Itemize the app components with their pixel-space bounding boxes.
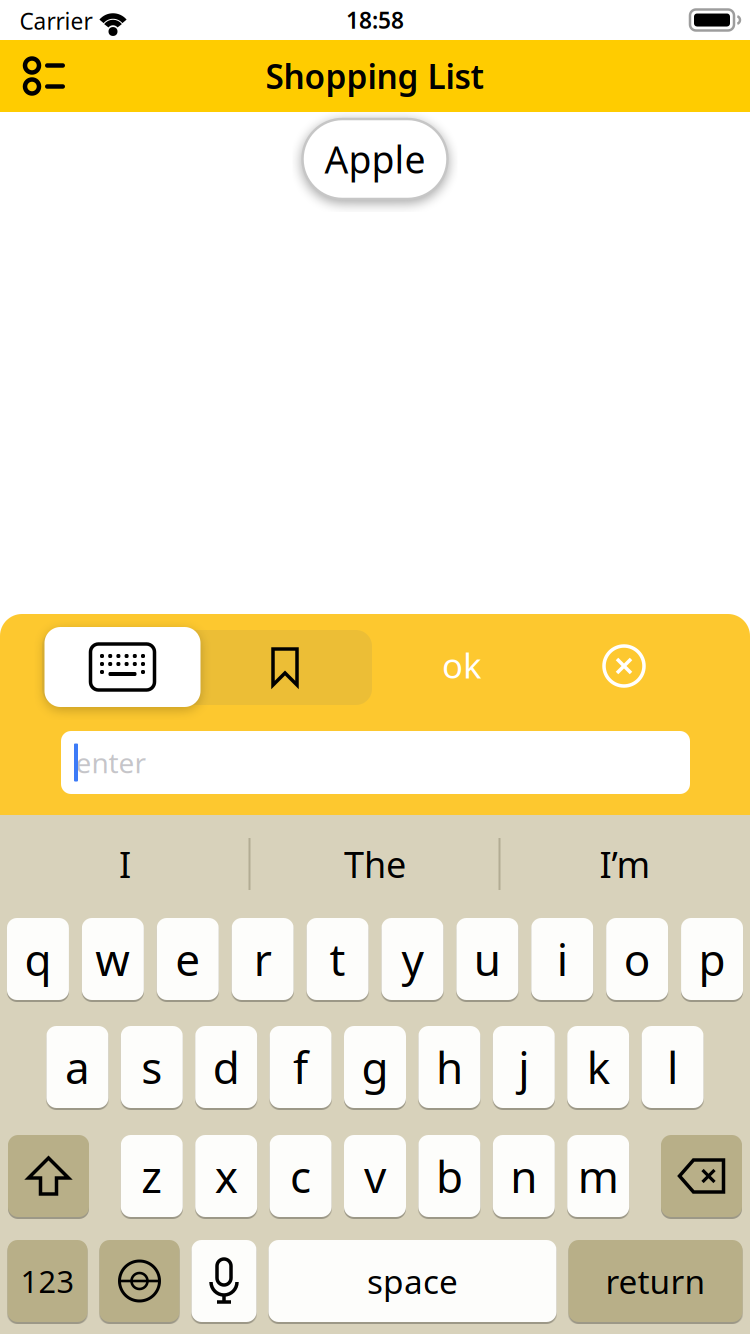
button[interactable]: q [7,918,69,1000]
button[interactable]: ok [417,630,507,700]
button[interactable]: c [270,1135,332,1217]
staticText: 18:58 [346,5,404,35]
staticText: g [361,1038,388,1096]
button[interactable] [99,1240,179,1322]
staticText: j [518,1038,529,1096]
button[interactable]: e [157,918,219,1000]
button[interactable]: space [268,1240,556,1322]
staticText: e [175,930,200,988]
button[interactable] [8,1135,89,1217]
button[interactable]: y [381,918,443,1000]
button[interactable]: j [493,1026,555,1108]
staticText: The [344,840,406,888]
button[interactable]: Apple [302,119,447,199]
staticText: q [24,930,51,988]
button[interactable] [22,56,66,96]
button[interactable]: I [5,829,245,899]
button[interactable]: n [493,1135,555,1217]
button[interactable]: r [232,918,294,1000]
button[interactable]: f [270,1026,332,1108]
button[interactable]: a [46,1026,108,1108]
staticText: m [578,1147,619,1205]
button[interactable]: t [307,918,369,1000]
button[interactable]: u [456,918,518,1000]
staticText: v [364,1147,386,1205]
staticText: w [95,930,130,988]
button[interactable]: enter [61,731,690,794]
staticText: c [290,1147,311,1205]
button[interactable]: g [344,1026,406,1108]
button[interactable] [44,627,200,707]
button[interactable] [661,1135,742,1217]
staticText: u [474,930,501,988]
staticText: space [367,1259,458,1303]
staticText: p [698,930,725,988]
button[interactable]: o [606,918,668,1000]
staticText: t [330,930,346,988]
button[interactable]: The [255,829,495,899]
button[interactable]: z [121,1135,183,1217]
button[interactable]: 123 [7,1240,87,1322]
staticText: enter [75,744,146,781]
staticText: z [141,1147,162,1205]
staticText: I [119,840,131,888]
button[interactable]: v [344,1135,406,1217]
button[interactable]: m [567,1135,629,1217]
staticText: s [141,1038,162,1096]
button[interactable] [594,636,654,696]
staticText: Apple [324,134,425,184]
staticText: k [587,1038,610,1096]
staticText: x [215,1147,238,1205]
button[interactable]: s [121,1026,183,1108]
button[interactable]: b [418,1135,480,1217]
staticText: d [213,1038,240,1096]
button[interactable]: h [418,1026,480,1108]
button[interactable]: return [568,1240,742,1322]
button[interactable]: I’m [505,829,745,899]
staticText: l [667,1038,678,1096]
staticText: n [510,1147,537,1205]
staticText: r [254,930,272,988]
button[interactable]: p [681,918,743,1000]
staticText: o [624,930,651,988]
staticText: b [436,1147,463,1205]
staticText: Carrier [19,6,92,36]
button[interactable]: k [567,1026,629,1108]
button[interactable] [235,632,335,702]
button[interactable]: d [195,1026,257,1108]
staticText: return [605,1259,705,1303]
staticText: y [401,930,423,988]
button[interactable] [191,1240,256,1322]
staticText: 123 [20,1261,74,1301]
button[interactable]: l [642,1026,704,1108]
staticText: f [293,1038,308,1096]
staticText: a [65,1038,90,1096]
button[interactable]: x [195,1135,257,1217]
staticText: I’m [599,840,650,888]
staticText: i [557,930,568,988]
staticText: h [436,1038,463,1096]
button[interactable]: w [82,918,144,1000]
staticText: Shopping List [265,54,484,98]
staticText: ok [442,642,482,688]
button[interactable]: i [531,918,593,1000]
